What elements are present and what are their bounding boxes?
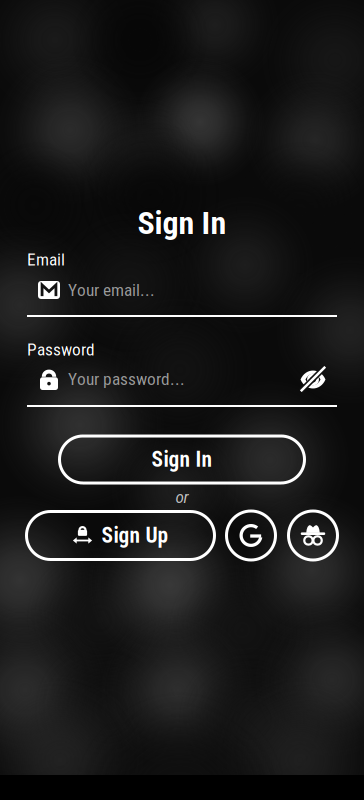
- button[interactable]: Sign In: [59, 436, 304, 483]
- button[interactable]: Continue as guest: [288, 511, 337, 560]
- staticText: Password: [27, 339, 95, 360]
- button[interactable]: Sign Up: [26, 511, 214, 559]
- staticText: Your password...: [68, 369, 185, 389]
- staticText: Sign Up: [101, 523, 168, 548]
- staticText: or: [175, 487, 188, 507]
- staticText: Your email...: [68, 280, 155, 300]
- staticText: Email: [27, 249, 65, 270]
- button[interactable]: Show password: [299, 365, 327, 393]
- button[interactable]: Sign in with Google: [226, 511, 275, 560]
- staticText: Sign In: [151, 447, 212, 472]
- staticText: Sign In: [137, 204, 226, 242]
